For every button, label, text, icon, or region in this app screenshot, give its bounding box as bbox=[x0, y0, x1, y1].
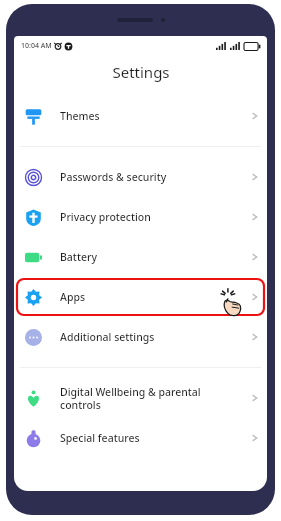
staticText: 10:04 AM bbox=[21, 41, 52, 51]
staticText: Themes bbox=[60, 109, 251, 123]
button[interactable]: Additional settings bbox=[14, 317, 267, 357]
staticText: Battery bbox=[60, 250, 251, 264]
button[interactable]: Special features bbox=[14, 418, 267, 458]
button[interactable]: Battery bbox=[14, 237, 267, 277]
button[interactable]: Apps bbox=[14, 277, 267, 317]
staticText: Digital Wellbeing & parental controls bbox=[60, 385, 251, 412]
staticText: Additional settings bbox=[60, 330, 251, 344]
button[interactable]: Passwords & security bbox=[14, 157, 267, 197]
staticText: Passwords & security bbox=[60, 170, 251, 184]
staticText: Special features bbox=[60, 431, 251, 445]
button[interactable]: Digital Wellbeing & parental controls bbox=[14, 378, 267, 418]
staticText: Settings bbox=[112, 62, 170, 82]
staticText: Privacy protection bbox=[60, 210, 251, 224]
staticText: Apps bbox=[60, 290, 251, 304]
button[interactable]: Themes bbox=[14, 96, 267, 136]
button[interactable]: Privacy protection bbox=[14, 197, 267, 237]
